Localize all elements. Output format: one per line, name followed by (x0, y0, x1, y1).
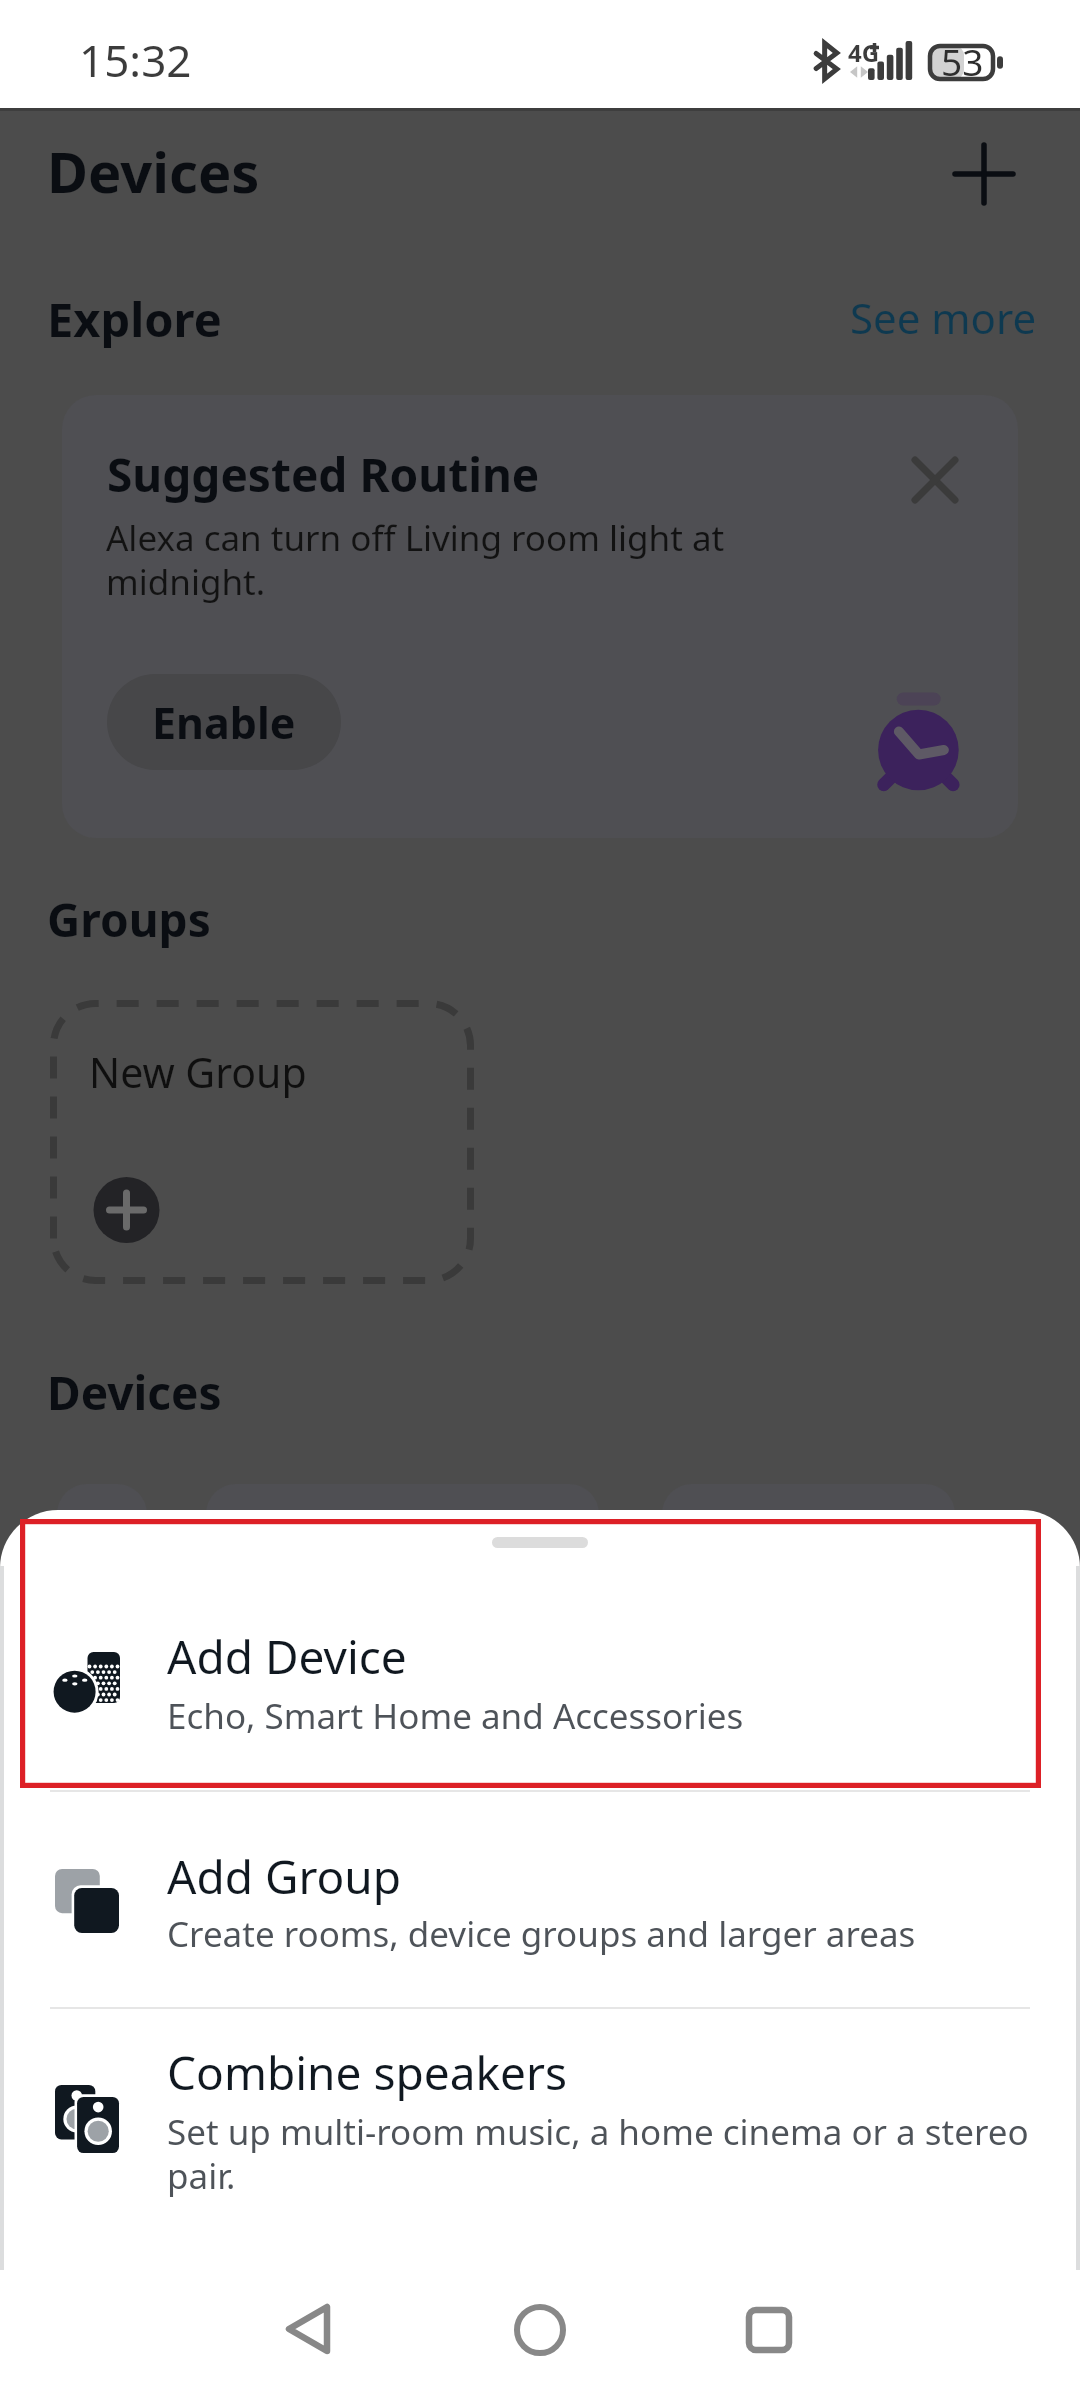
button[interactable]: Back (268, 2289, 348, 2369)
button[interactable]: Add Device (0, 1518, 1080, 1790)
button[interactable]: Recent apps (729, 2290, 809, 2370)
staticText: Combine speakers (167, 2041, 568, 2104)
button[interactable]: New Group (50, 1000, 474, 1284)
staticText: Devices (47, 1361, 222, 1424)
staticText: 15:32 (79, 30, 192, 90)
button[interactable]: Add device (944, 134, 1024, 214)
staticText: Suggested Routine (107, 443, 540, 506)
staticText: See more (850, 289, 1037, 346)
staticText: 53 (941, 36, 984, 86)
staticText: Devices (47, 133, 260, 209)
button[interactable]: Combine speakers (0, 2009, 1080, 2229)
staticText: Add Device (167, 1625, 407, 1688)
staticText: Add Group (167, 1845, 402, 1908)
staticText: Explore (47, 287, 222, 351)
button[interactable]: Enable (107, 674, 341, 770)
button[interactable]: Add Group (0, 1792, 1080, 2007)
staticText: Echo, Smart Home and Accessories (167, 1692, 744, 1740)
staticText: Groups (47, 888, 211, 951)
button[interactable]: Dismiss (890, 435, 980, 525)
staticText: Alexa can turn off Living room light at … (106, 514, 725, 605)
staticText: 4G (848, 36, 880, 69)
staticText: Create rooms, device groups and larger a… (167, 1910, 916, 1958)
staticText: Enable (152, 693, 296, 752)
staticText: New Group (89, 1044, 307, 1100)
button[interactable]: Home (500, 2290, 580, 2370)
staticText: Set up multi-room music, a home cinema o… (167, 2108, 1029, 2199)
button[interactable]: See more (842, 281, 1045, 354)
